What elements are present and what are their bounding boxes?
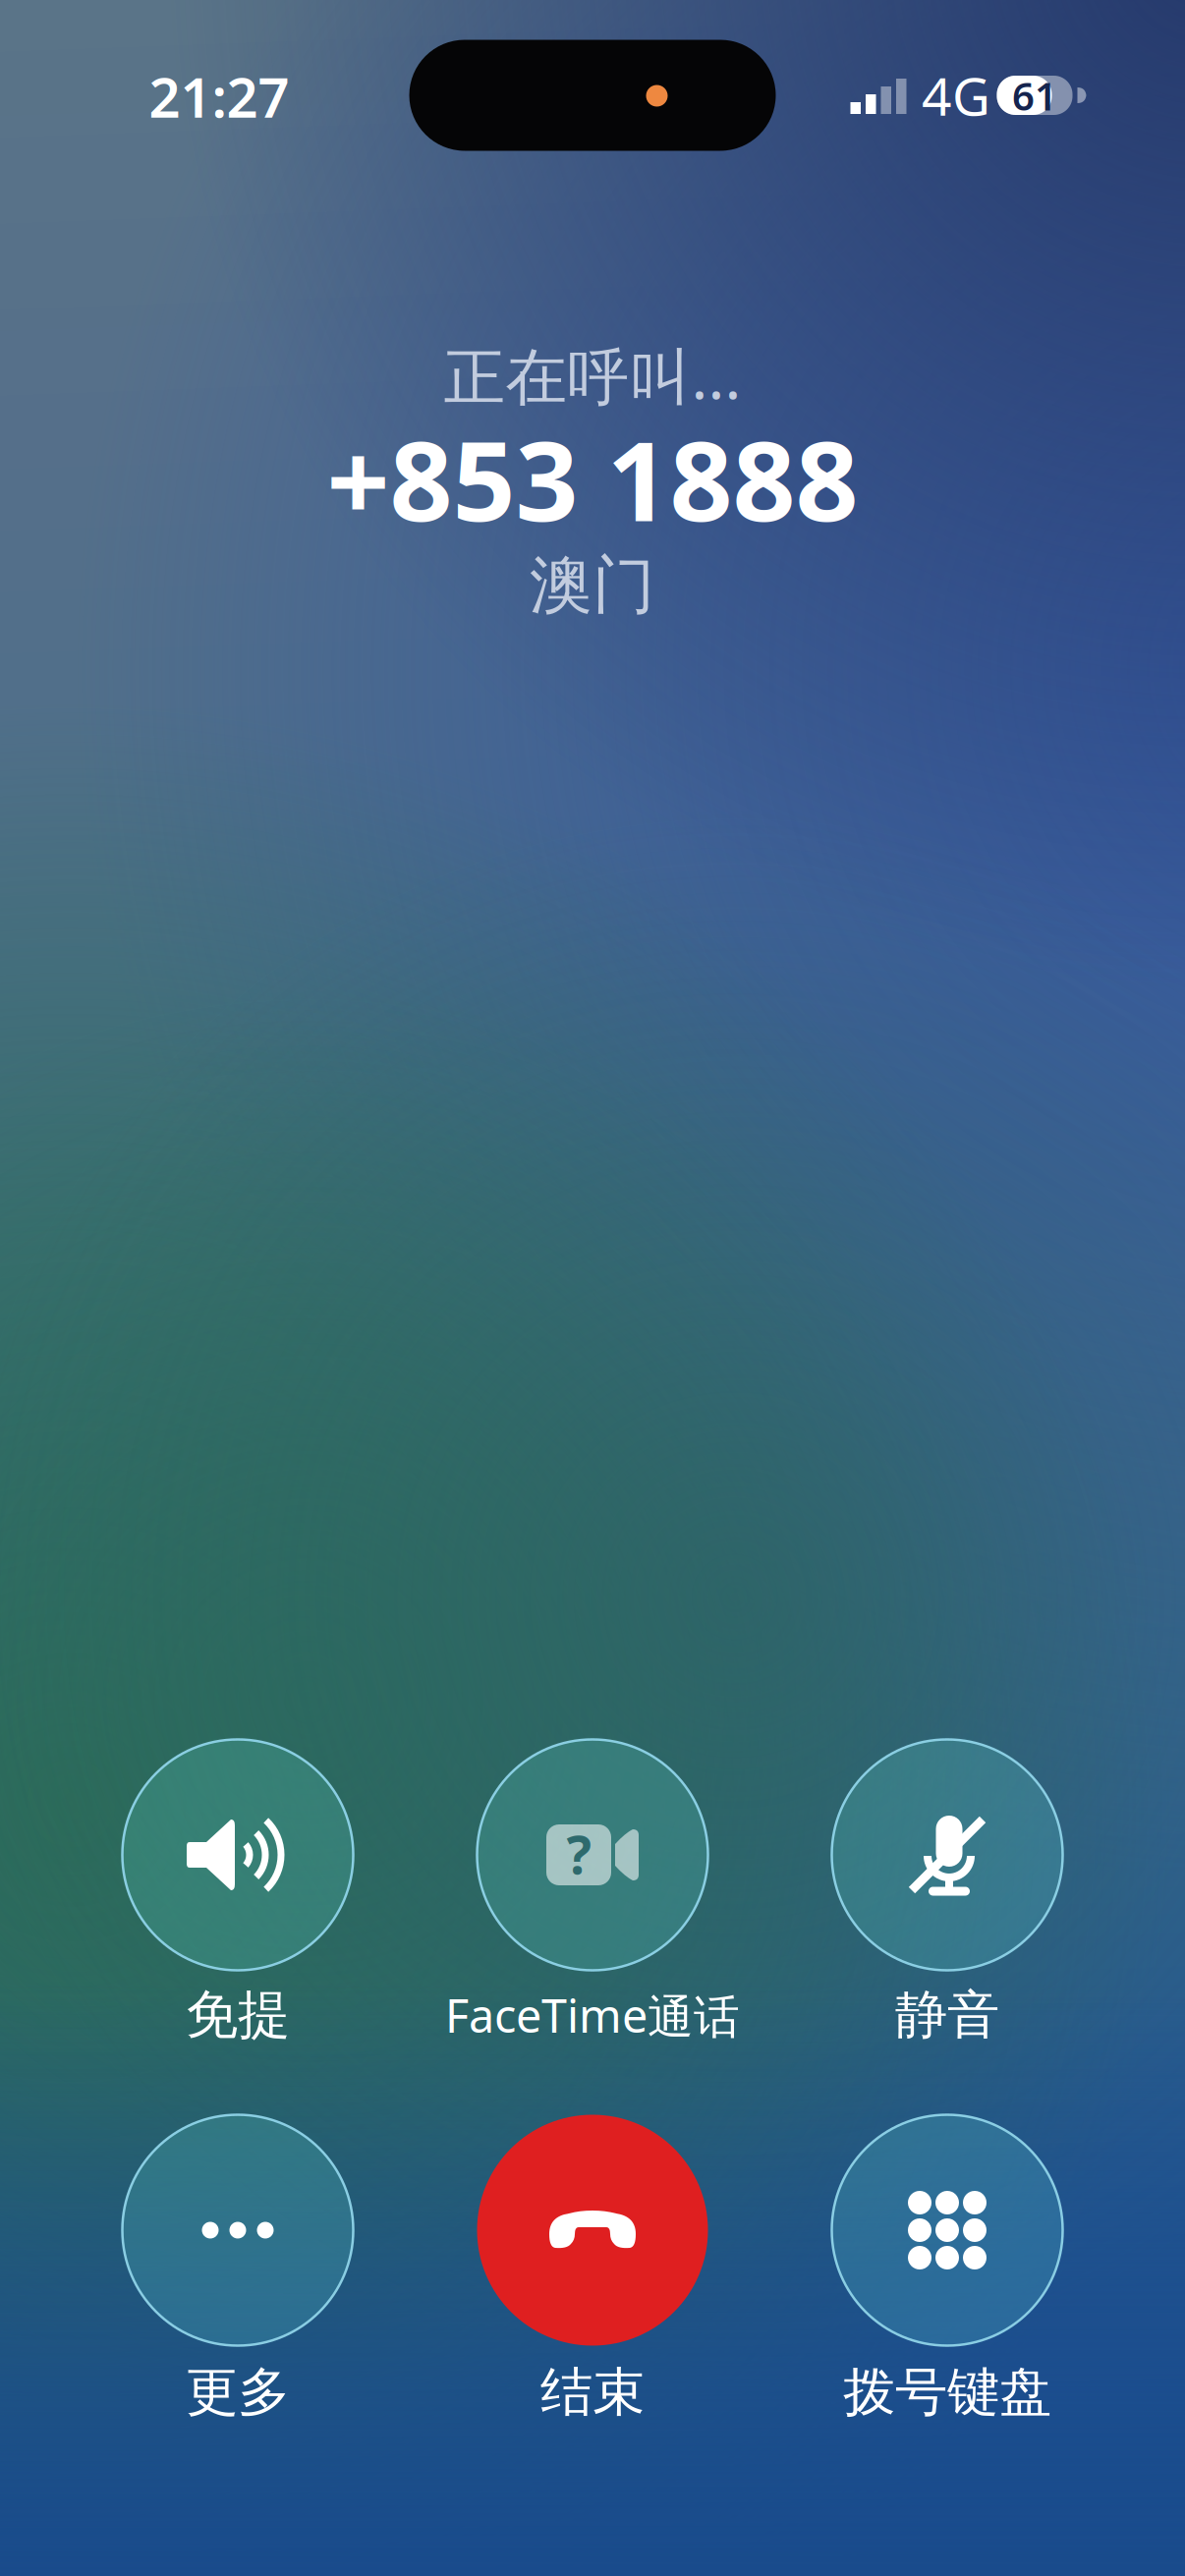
staticText: 更多 [186, 2360, 290, 2424]
button[interactable]: 结束 [425, 2113, 760, 2432]
staticText: ? [566, 1819, 591, 1889]
button[interactable]: 更多 [71, 2113, 405, 2432]
staticText: 静音 [895, 1983, 999, 2047]
staticText: FaceTime通话 [445, 1984, 740, 2046]
button[interactable]: FaceTime通话 [386, 1737, 799, 2054]
staticText: 61 [1012, 69, 1057, 121]
staticText: 免提 [186, 1983, 290, 2047]
staticText: +853 1888 [327, 405, 858, 551]
button[interactable]: 免提 [71, 1737, 405, 2054]
button[interactable]: 静音 [780, 1737, 1114, 2054]
staticText: 21:27 [149, 60, 289, 133]
staticText: 正在呼叫... [444, 334, 741, 416]
staticText: 澳门 [530, 547, 655, 624]
button[interactable]: 拨号键盘 [780, 2113, 1114, 2432]
staticText: 拨号键盘 [843, 2360, 1051, 2424]
staticText: 结束 [540, 2360, 645, 2424]
staticText: 4G [922, 61, 990, 130]
